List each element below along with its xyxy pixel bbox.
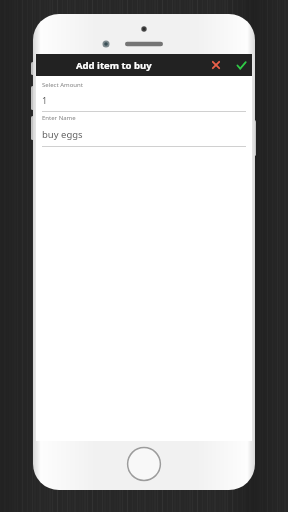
- button[interactable]: Select Amount: [36, 79, 252, 111]
- button[interactable]: Enter Name: [36, 112, 252, 146]
- button[interactable]: Home: [126, 446, 162, 482]
- staticText: Add item to buy: [76, 59, 152, 72]
- staticText: Enter Name: [42, 114, 76, 122]
- button[interactable]: Cancel: [206, 55, 226, 75]
- staticText: buy eggs: [42, 128, 83, 141]
- staticText: 1: [42, 94, 48, 106]
- staticText: Select Amount: [42, 81, 83, 89]
- button[interactable]: Confirm: [231, 55, 251, 75]
